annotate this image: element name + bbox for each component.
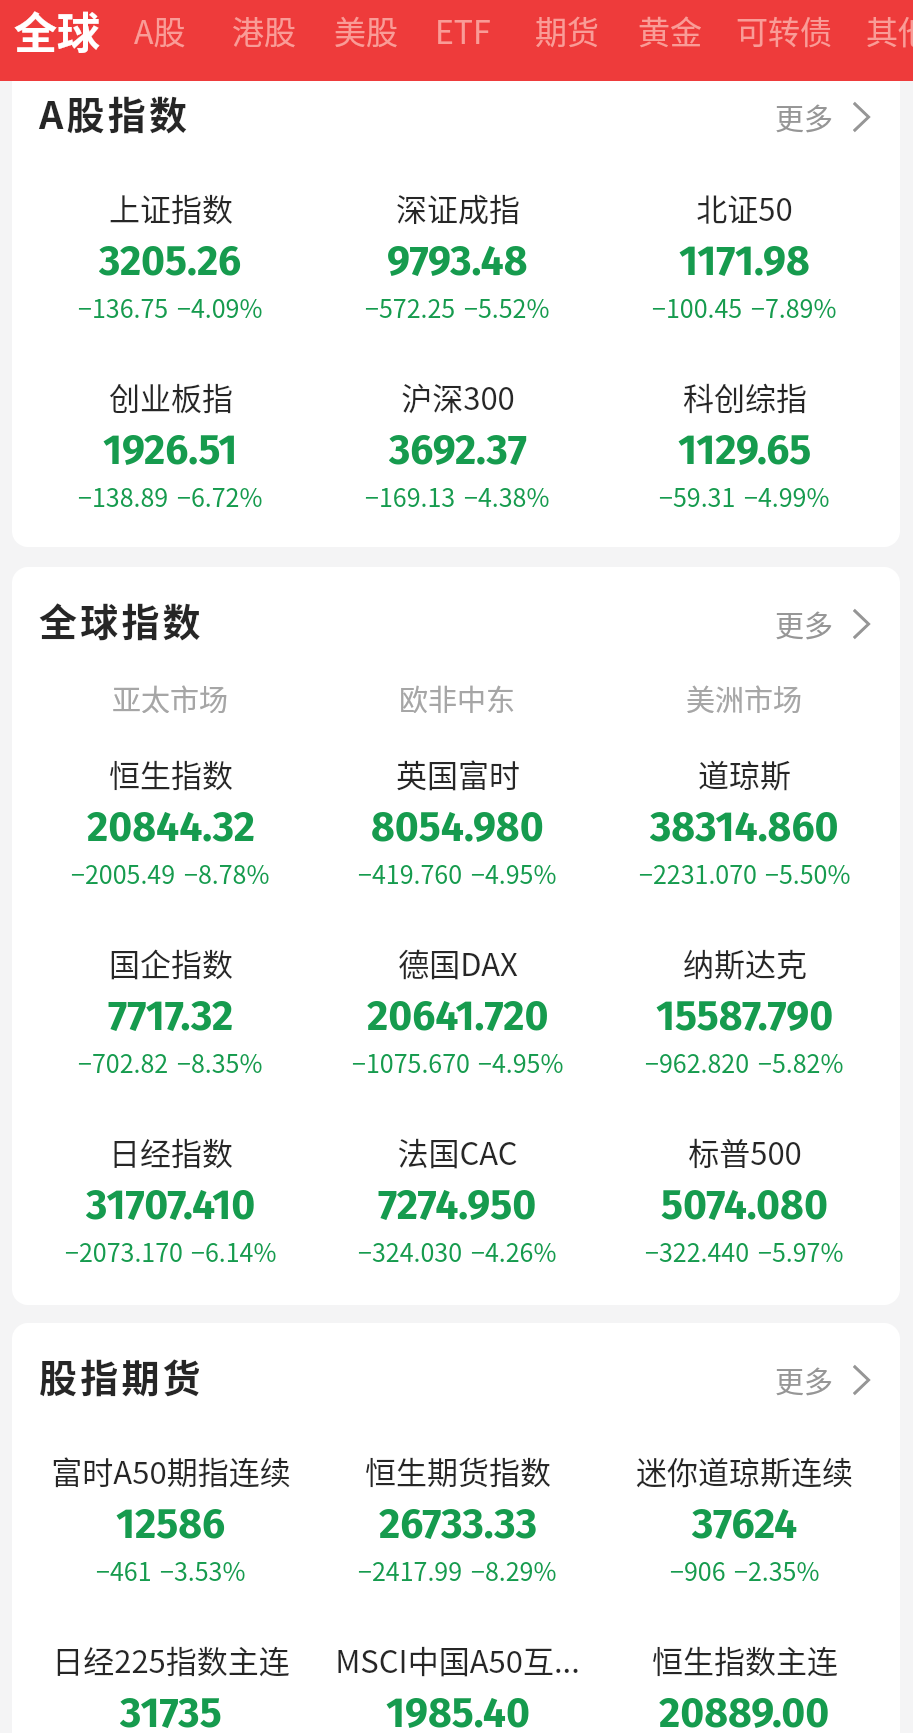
staticText: −4.38% bbox=[464, 478, 550, 508]
button[interactable]: 恒生指数 bbox=[27, 751, 314, 885]
staticText: −5.52% bbox=[464, 289, 550, 319]
button[interactable]: 亚太市场 bbox=[27, 677, 314, 713]
staticText: 1129.65 bbox=[678, 426, 812, 466]
button[interactable]: 迷你道琼斯连续 bbox=[601, 1448, 888, 1582]
staticText: 深证成指 bbox=[396, 185, 520, 225]
staticText: 3205.26 bbox=[99, 237, 242, 277]
staticText: 沪深300 bbox=[401, 374, 515, 414]
button[interactable]: 可转债 bbox=[736, 0, 833, 70]
button[interactable]: 日经指数 bbox=[27, 1129, 314, 1263]
staticText: −2417.99 bbox=[358, 1552, 463, 1582]
button[interactable]: 科创综指 bbox=[601, 374, 888, 508]
staticText: 1171.98 bbox=[679, 237, 810, 277]
staticText: 科创综指 bbox=[683, 374, 807, 414]
staticText: 美洲市场 bbox=[686, 677, 803, 713]
button[interactable]: 北证50 bbox=[601, 185, 888, 319]
button[interactable]: 港股 bbox=[232, 0, 297, 70]
staticText: −59.31 bbox=[659, 478, 736, 508]
staticText: 15587.790 bbox=[656, 992, 834, 1032]
staticText: 美股 bbox=[334, 7, 399, 53]
staticText: −2073.170 bbox=[65, 1233, 183, 1263]
button[interactable]: 富时A50期指连续 bbox=[27, 1448, 314, 1582]
staticText: −5.82% bbox=[758, 1044, 844, 1074]
button[interactable]: 深证成指 bbox=[314, 185, 601, 319]
button[interactable]: ETF bbox=[435, 0, 491, 70]
staticText: 31707.410 bbox=[86, 1181, 256, 1221]
button[interactable]: 黄金 bbox=[638, 0, 703, 70]
staticText: ETF bbox=[435, 7, 491, 53]
button[interactable]: 美股 bbox=[334, 0, 399, 70]
staticText: −2005.49 bbox=[71, 855, 176, 885]
button[interactable]: 上证指数 bbox=[27, 185, 314, 319]
staticText: −906 bbox=[670, 1552, 726, 1582]
staticText: 1985.40 bbox=[386, 1689, 530, 1729]
staticText: −138.89 bbox=[78, 478, 169, 508]
staticText: 3692.37 bbox=[389, 426, 527, 466]
staticText: 37624 bbox=[692, 1500, 798, 1540]
staticText: 12586 bbox=[116, 1500, 226, 1540]
staticText: 可转债 bbox=[736, 7, 833, 53]
staticText: 黄金 bbox=[638, 7, 703, 53]
staticText: 5074.080 bbox=[661, 1181, 828, 1221]
button[interactable]: 沪深300 bbox=[314, 374, 601, 508]
button[interactable]: 其他 bbox=[866, 0, 913, 70]
staticText: 迷你道琼斯连续 bbox=[636, 1448, 853, 1488]
staticText: 亚太市场 bbox=[112, 677, 229, 713]
staticText: 标普500 bbox=[688, 1129, 802, 1169]
staticText: 港股 bbox=[232, 7, 297, 53]
button[interactable]: 创业板指 bbox=[27, 374, 314, 508]
staticText: 英国富时 bbox=[396, 751, 520, 791]
button[interactable]: 更多 bbox=[769, 86, 876, 148]
staticText: −4.95% bbox=[478, 1044, 564, 1074]
button[interactable]: 恒生期货指数 bbox=[314, 1448, 601, 1582]
staticText: −3.53% bbox=[160, 1552, 246, 1582]
staticText: −8.29% bbox=[471, 1552, 557, 1582]
button[interactable]: 法国CAC bbox=[314, 1129, 601, 1263]
button[interactable]: 全球 bbox=[14, 0, 104, 70]
button[interactable]: MSCI中国A50互... bbox=[314, 1637, 601, 1733]
staticText: 更多 bbox=[775, 96, 834, 138]
button[interactable]: 恒生指数主连 bbox=[601, 1637, 888, 1733]
button[interactable]: 纳斯达克 bbox=[601, 940, 888, 1074]
button[interactable]: 日经225指数主连 bbox=[27, 1637, 314, 1733]
staticText: −702.82 bbox=[78, 1044, 169, 1074]
button[interactable]: A股 bbox=[134, 0, 186, 70]
staticText: 1926.51 bbox=[103, 426, 238, 466]
staticText: 日经指数 bbox=[109, 1129, 233, 1169]
staticText: 20641.720 bbox=[367, 992, 549, 1032]
staticText: 38314.860 bbox=[650, 803, 839, 843]
staticText: 法国CAC bbox=[397, 1129, 518, 1169]
staticText: −419.760 bbox=[358, 855, 463, 885]
staticText: −322.440 bbox=[645, 1233, 750, 1263]
staticText: −8.35% bbox=[177, 1044, 263, 1074]
button[interactable]: 标普500 bbox=[601, 1129, 888, 1263]
staticText: 20844.32 bbox=[87, 803, 255, 843]
staticText: 7717.32 bbox=[108, 992, 234, 1032]
staticText: −4.95% bbox=[471, 855, 557, 885]
button[interactable]: 美洲市场 bbox=[601, 677, 888, 713]
button[interactable]: 欧非中东 bbox=[314, 677, 601, 713]
staticText: 上证指数 bbox=[109, 185, 233, 225]
staticText: 股指期货 bbox=[39, 1348, 204, 1403]
staticText: 富时A50期指连续 bbox=[51, 1448, 291, 1488]
button[interactable]: 更多 bbox=[769, 593, 876, 655]
button[interactable]: 期货 bbox=[535, 0, 600, 70]
staticText: 全球指数 bbox=[39, 592, 204, 647]
staticText: 8054.980 bbox=[371, 803, 544, 843]
staticText: −461 bbox=[96, 1552, 152, 1582]
button[interactable]: 道琼斯 bbox=[601, 751, 888, 885]
button[interactable]: 德国DAX bbox=[314, 940, 601, 1074]
staticText: 恒生期货指数 bbox=[365, 1448, 551, 1488]
staticText: 更多 bbox=[775, 1359, 834, 1401]
button[interactable]: 更多 bbox=[769, 1349, 876, 1411]
staticText: −136.75 bbox=[78, 289, 169, 319]
button[interactable]: 国企指数 bbox=[27, 940, 314, 1074]
staticText: A股指数 bbox=[39, 85, 191, 140]
staticText: 全球 bbox=[14, 0, 100, 61]
staticText: A股 bbox=[134, 7, 186, 53]
staticText: 31735 bbox=[120, 1689, 222, 1729]
staticText: 20889.00 bbox=[659, 1689, 830, 1729]
button[interactable]: 英国富时 bbox=[314, 751, 601, 885]
staticText: −4.09% bbox=[177, 289, 263, 319]
staticText: −6.72% bbox=[177, 478, 263, 508]
